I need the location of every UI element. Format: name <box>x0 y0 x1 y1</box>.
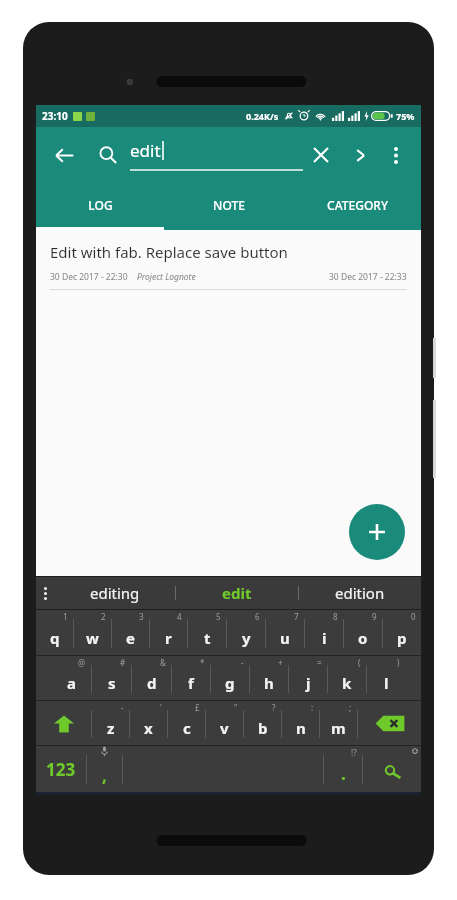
staticText: f <box>188 673 194 693</box>
button[interactable]: Keyboard options <box>36 576 54 610</box>
staticText: , <box>102 764 107 787</box>
button[interactable]: CATEGORY <box>293 183 421 227</box>
button[interactable]: Search <box>94 141 122 169</box>
button[interactable]: Shift <box>36 701 91 746</box>
staticText: 8 <box>333 611 338 622</box>
button[interactable]: 7 <box>266 610 304 656</box>
button[interactable]: 0 <box>383 610 421 656</box>
button[interactable]: ? <box>244 701 281 746</box>
staticText: b <box>258 718 268 738</box>
staticText: ; <box>349 702 352 713</box>
staticText: j <box>306 673 311 693</box>
staticText: t <box>204 628 211 648</box>
staticText: " <box>234 702 238 713</box>
staticText: !? <box>351 747 357 758</box>
staticText: - <box>241 657 244 668</box>
button[interactable]: 3 <box>112 610 149 656</box>
button[interactable]: ( <box>328 656 366 701</box>
button[interactable]: 123 <box>36 746 86 792</box>
staticText: 123 <box>46 758 76 781</box>
staticText: n <box>296 718 306 738</box>
button[interactable]: Search <box>363 746 421 792</box>
staticText: edit <box>130 139 161 162</box>
staticText: . <box>341 762 346 785</box>
button[interactable]: , <box>87 746 122 792</box>
button[interactable]: £ <box>168 701 205 746</box>
staticText: : <box>311 702 314 713</box>
staticText: 0.24K/s <box>246 110 279 122</box>
staticText: x <box>144 718 153 738</box>
button[interactable]: Add <box>349 504 405 560</box>
staticText: LOG <box>88 197 113 213</box>
staticText: + <box>278 657 283 668</box>
button[interactable]: * <box>172 656 210 701</box>
staticText: q <box>50 628 60 648</box>
button[interactable]: 4 <box>150 610 187 656</box>
staticText: 2 <box>101 611 106 622</box>
button[interactable]: editing <box>54 576 175 610</box>
staticText: Project Lognote <box>137 271 196 283</box>
button[interactable]: & <box>132 656 171 701</box>
button[interactable]: Next result <box>343 138 377 172</box>
staticText: e <box>126 628 135 648</box>
button[interactable]: : <box>282 701 319 746</box>
staticText: @ <box>78 657 86 668</box>
button[interactable]: Backspace <box>358 701 421 746</box>
button[interactable]: 1 <box>36 610 73 656</box>
button[interactable]: # <box>92 656 131 701</box>
staticText: editing <box>90 583 140 603</box>
staticText: o <box>358 628 368 648</box>
staticText: 5 <box>216 611 221 622</box>
button[interactable]: !? <box>324 746 362 792</box>
button[interactable]: = <box>289 656 327 701</box>
button[interactable]: " <box>206 701 243 746</box>
button[interactable]: 8 <box>305 610 343 656</box>
staticText: ' <box>160 702 162 713</box>
button[interactable]: 9 <box>344 610 382 656</box>
staticText: h <box>264 673 274 693</box>
button[interactable]: 5 <box>188 610 226 656</box>
button[interactable]: 6 <box>227 610 265 656</box>
staticText: 1 <box>63 611 68 622</box>
staticText: d <box>147 673 157 693</box>
button[interactable]: More options <box>379 138 413 172</box>
staticText: = <box>317 657 322 668</box>
button[interactable]: Clear <box>303 137 339 173</box>
staticText: 3 <box>139 611 144 622</box>
staticText: CATEGORY <box>327 197 388 213</box>
staticText: edition <box>335 583 385 603</box>
staticText: 4 <box>177 611 182 622</box>
button[interactable]: ) <box>367 656 405 701</box>
button[interactable]: 2 <box>74 610 111 656</box>
staticText: ( <box>358 657 361 668</box>
button[interactable]: - <box>92 701 129 746</box>
staticText: u <box>280 628 290 648</box>
staticText: c <box>183 718 191 738</box>
staticText: v <box>220 718 229 738</box>
staticText: m <box>331 718 346 738</box>
button[interactable]: @ <box>52 656 91 701</box>
staticText: # <box>120 657 126 668</box>
staticText: ? <box>272 702 276 713</box>
button[interactable]: edition <box>299 576 421 610</box>
staticText: & <box>160 657 166 668</box>
staticText: 30 Dec 2017 - 22:33 <box>329 271 407 283</box>
staticText: 75% <box>396 110 415 122</box>
button[interactable]: edit <box>130 139 303 171</box>
button[interactable]: edit <box>176 576 298 610</box>
button[interactable]: Edit with fab. Replace save button <box>36 230 421 290</box>
button[interactable]: Back <box>44 135 84 175</box>
staticText: * <box>200 657 205 668</box>
button[interactable]: - <box>211 656 249 701</box>
staticText: p <box>397 628 407 648</box>
staticText: 9 <box>372 611 377 622</box>
staticText: 23:10 <box>42 109 68 123</box>
button[interactable]: NOTE <box>165 183 293 227</box>
button[interactable]: ; <box>320 701 357 746</box>
button[interactable]: + <box>250 656 288 701</box>
button[interactable]: LOG <box>36 183 165 227</box>
staticText: y <box>242 628 251 648</box>
button[interactable]: ' <box>130 701 167 746</box>
staticText: w <box>86 628 99 648</box>
